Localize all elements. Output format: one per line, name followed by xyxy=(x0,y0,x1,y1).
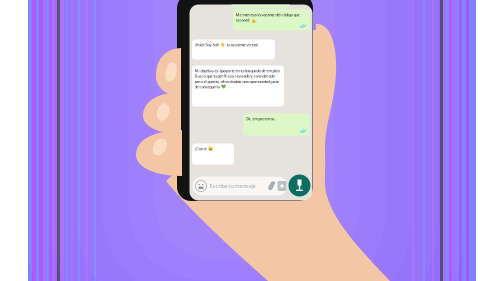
staticText: ¡Claro! 😄 xyxy=(194,146,212,151)
staticText: Mi objetivo es apoyarte en tu búsqueda d… xyxy=(194,68,280,89)
button[interactable]: Record voice message xyxy=(288,174,310,196)
staticText: Ok, empecemos. xyxy=(245,116,275,121)
staticText: Me interesa la vacante del código que es… xyxy=(235,12,299,23)
staticText: ¡Hola! Soy Sofi 👋, tu asistente virtual. xyxy=(194,42,258,47)
button[interactable]: Escribe tu mensaje xyxy=(192,176,287,195)
staticText: Escribe tu mensaje xyxy=(209,182,255,190)
